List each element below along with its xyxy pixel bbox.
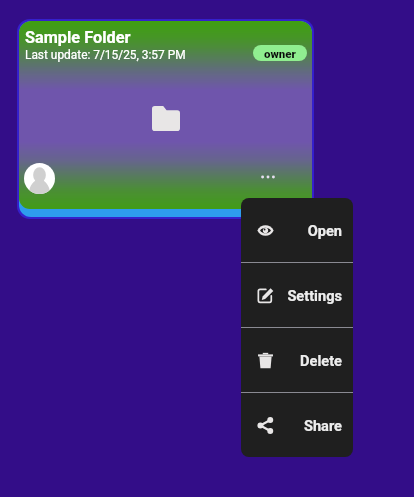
- button[interactable]: Delete: [241, 328, 353, 392]
- button[interactable]: Sample Folder: [19, 21, 312, 209]
- staticText: Sample Folder: [25, 28, 131, 47]
- button[interactable]: Share: [241, 393, 353, 457]
- button[interactable]: owner: [253, 45, 307, 61]
- staticText: Settings: [274, 287, 342, 304]
- staticText: Open: [274, 222, 342, 239]
- button[interactable]: Open: [241, 198, 353, 262]
- staticText: Share: [274, 417, 342, 434]
- staticText: Delete: [274, 352, 342, 369]
- button[interactable]: Settings: [241, 263, 353, 327]
- staticText: Last update: 7/15/25, 3:57 PM: [25, 48, 186, 62]
- staticText: owner: [264, 47, 296, 60]
- button[interactable]: Account: [24, 163, 55, 194]
- button[interactable]: More options: [256, 165, 280, 189]
